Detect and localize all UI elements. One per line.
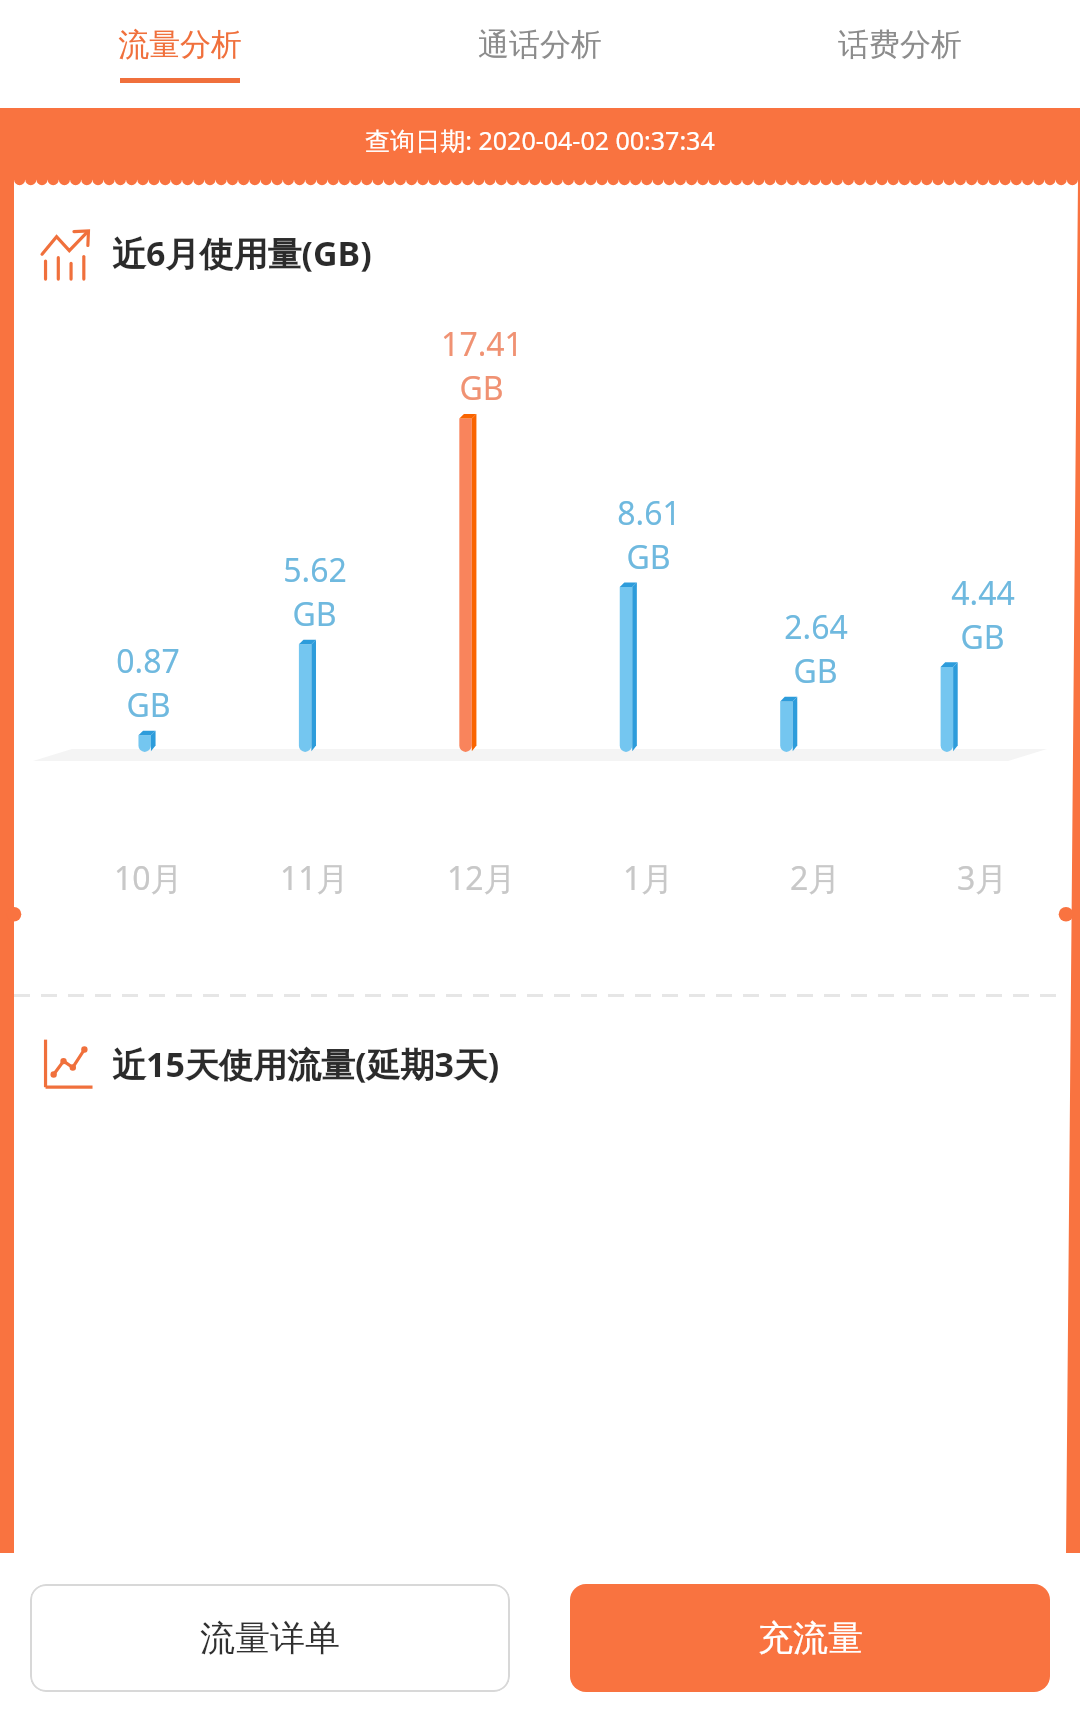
staticText: 流量详单 [200, 1616, 340, 1660]
button[interactable]: 流量分析 [0, 0, 360, 108]
staticText: 充流量 [758, 1616, 863, 1660]
button[interactable]: 通话分析 [360, 0, 720, 108]
staticText: 话费分析 [838, 25, 962, 64]
staticText: GB [292, 592, 337, 636]
staticText: 2月 [790, 856, 841, 900]
staticText: 10月 [114, 856, 183, 900]
button[interactable]: 流量详单 [30, 1584, 510, 1692]
staticText: GB [626, 535, 671, 579]
staticText: 3月 [957, 856, 1008, 900]
staticText: 流量分析 [118, 25, 242, 64]
staticText: 17.41 [441, 322, 523, 366]
staticText: 8.61 [617, 491, 681, 535]
staticText: 4.44 [951, 571, 1015, 615]
button[interactable]: 话费分析 [720, 0, 1080, 108]
staticText: 查询日期: 2020-04-02 00:37:34 [0, 123, 1080, 157]
staticText: 1月 [623, 856, 674, 900]
staticText: 近6月使用量(GB) [112, 230, 372, 276]
staticText: GB [459, 366, 504, 410]
staticText: 近15天使用流量(延期3天) [112, 1041, 500, 1087]
staticText: 0.87 [116, 639, 180, 683]
staticText: 2.64 [784, 605, 848, 649]
staticText: 12月 [447, 856, 516, 900]
staticText: GB [960, 615, 1005, 659]
button[interactable]: 充流量 [570, 1584, 1050, 1692]
staticText: 5.62 [283, 548, 347, 592]
staticText: GB [793, 649, 838, 693]
staticText: 11月 [280, 856, 349, 900]
staticText: GB [126, 683, 171, 727]
staticText: 通话分析 [478, 25, 602, 64]
